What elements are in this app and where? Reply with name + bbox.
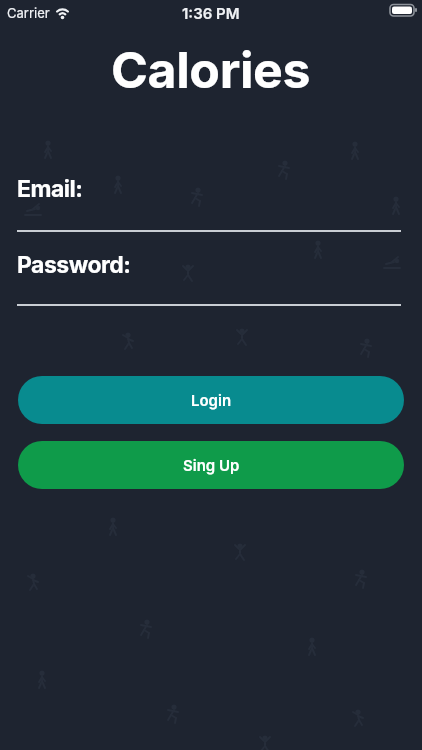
button[interactable]: Login <box>18 376 404 424</box>
staticText: Sing Up <box>183 456 240 474</box>
button[interactable] <box>17 176 401 232</box>
staticText: Password: <box>17 251 131 279</box>
staticText: Carrier <box>7 5 50 21</box>
staticText: Calories <box>111 40 311 100</box>
button[interactable] <box>17 250 401 306</box>
staticText: 1:36 PM <box>182 4 240 22</box>
staticText: Login <box>191 391 232 409</box>
button[interactable]: Sing Up <box>18 441 404 489</box>
staticText: Email: <box>17 175 83 203</box>
